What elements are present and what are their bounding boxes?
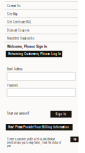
button[interactable]: Gift Certificate FAQ <box>5 18 78 26</box>
staticText: Welcome, Please Sign In <box>7 44 47 49</box>
staticText: which allows you to shop faster, track t… <box>7 141 61 147</box>
staticText: Email Address: <box>7 67 23 71</box>
button[interactable]: Forgot your password? <box>7 112 37 115</box>
button[interactable]: Newsletter Unsubscribe <box>5 34 78 42</box>
staticText: Newsletter Unsubscribe <box>7 37 34 40</box>
button[interactable]: Sign In <box>50 111 72 118</box>
button[interactable]: Contact Us <box>5 2 78 10</box>
staticText: Site Map <box>7 12 18 16</box>
staticText: New! Please Provide Your Billing Informa… <box>8 125 69 129</box>
button[interactable]: Discount Coupons <box>5 26 78 34</box>
staticText: Forgot your password? <box>7 112 29 115</box>
staticText: Discount Coupons <box>7 29 29 32</box>
staticText: Create a customer profile with us and ch… <box>7 138 55 141</box>
staticText: Returning Customers, Please Log In <box>8 52 61 56</box>
button[interactable]: Site Map <box>5 10 78 18</box>
staticText: Gift Certificate FAQ <box>7 20 31 24</box>
staticText: Sign In <box>55 112 66 116</box>
staticText: Top <box>73 138 76 141</box>
button[interactable]: Top <box>70 137 79 142</box>
staticText: Password: <box>7 84 18 87</box>
staticText: Contact Us <box>7 4 20 8</box>
